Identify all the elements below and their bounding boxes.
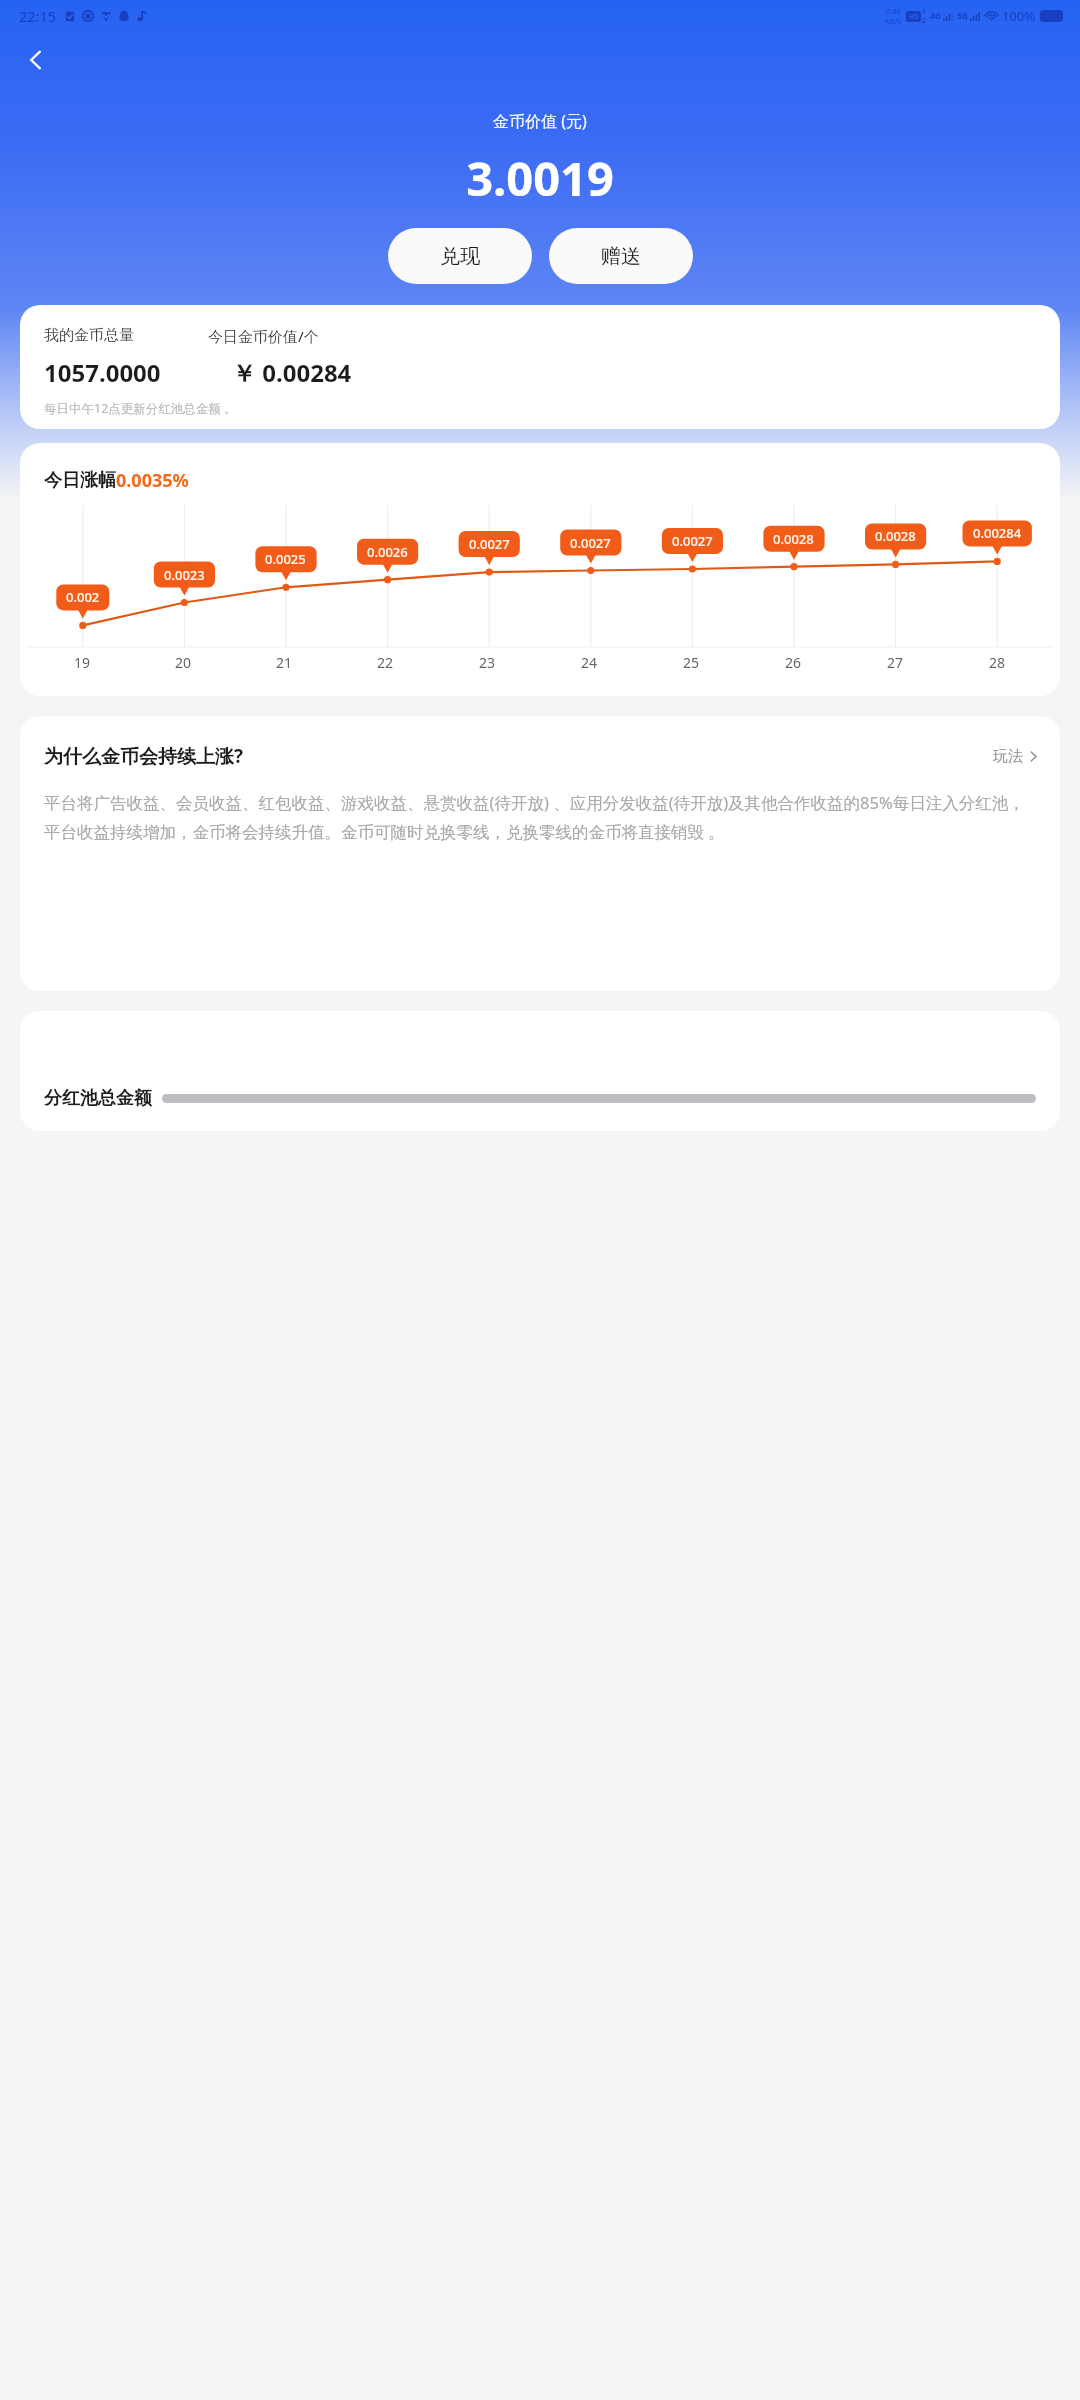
staticText: 24 (581, 653, 598, 672)
button[interactable]: 赠送 (549, 228, 693, 284)
staticText: 23 (479, 653, 496, 672)
button[interactable]: Back (12, 36, 60, 84)
staticText: 0.0028 (773, 530, 814, 548)
staticText: 兑现 (440, 244, 480, 269)
staticText: 20 (175, 653, 192, 672)
staticText: 0.0028 (875, 527, 916, 545)
button[interactable]: 玩法 (993, 747, 1038, 766)
staticText: 100% (1002, 7, 1036, 25)
staticText: 玩法 (993, 747, 1023, 766)
staticText: 0.0035% (116, 468, 189, 493)
staticText: 22:15 (19, 6, 57, 26)
staticText: 25 (683, 653, 700, 672)
staticText: 5G (957, 10, 969, 22)
staticText: 今日涨幅 (44, 469, 116, 492)
staticText: 0.80 (886, 6, 901, 16)
staticText: 金币价值 (元) (493, 110, 587, 132)
staticText: 27 (887, 653, 904, 672)
staticText: 为什么金币会持续上涨? (44, 743, 244, 769)
staticText: 0.002 (66, 588, 100, 606)
staticText: 1 (922, 7, 926, 16)
staticText: ￥ 0.00284 (232, 356, 352, 389)
staticText: 0.0027 (570, 534, 611, 552)
staticText: 28 (989, 653, 1006, 672)
staticText: 0.0026 (367, 543, 408, 561)
staticText: 今日金币价值/个 (208, 326, 319, 346)
staticText: 0.0025 (265, 550, 306, 568)
staticText: 21 (276, 653, 293, 672)
staticText: 2 (922, 16, 926, 25)
staticText: 0.00284 (973, 524, 1022, 542)
staticText: 0.0027 (672, 532, 713, 550)
staticText: 每日中午12点更新分红池总金额 。 (44, 400, 237, 417)
staticText: KB/s (885, 16, 902, 26)
staticText: 0.0027 (469, 535, 510, 553)
button[interactable]: 今日涨幅 (20, 443, 1060, 696)
staticText: 1057.0000 (44, 356, 161, 389)
staticText: 分红池总金额 (44, 1087, 152, 1110)
staticText: 0.0023 (164, 566, 205, 584)
staticText: 19 (74, 653, 91, 672)
staticText: 26 (785, 653, 802, 672)
staticText: 平台将广告收益、会员收益、红包收益、游戏收益、悬赏收益(待开放) 、应用分发收益… (44, 791, 1038, 843)
staticText: 3.0019 (466, 146, 614, 210)
staticText: 22 (377, 653, 394, 672)
staticText: 4G (930, 10, 942, 22)
button[interactable]: 我的金币总量 (20, 305, 1060, 429)
staticText: 我的金币总量 (44, 326, 134, 345)
staticText: HD (909, 12, 919, 21)
staticText: 赠送 (601, 244, 641, 269)
button[interactable]: 兑现 (388, 228, 532, 284)
